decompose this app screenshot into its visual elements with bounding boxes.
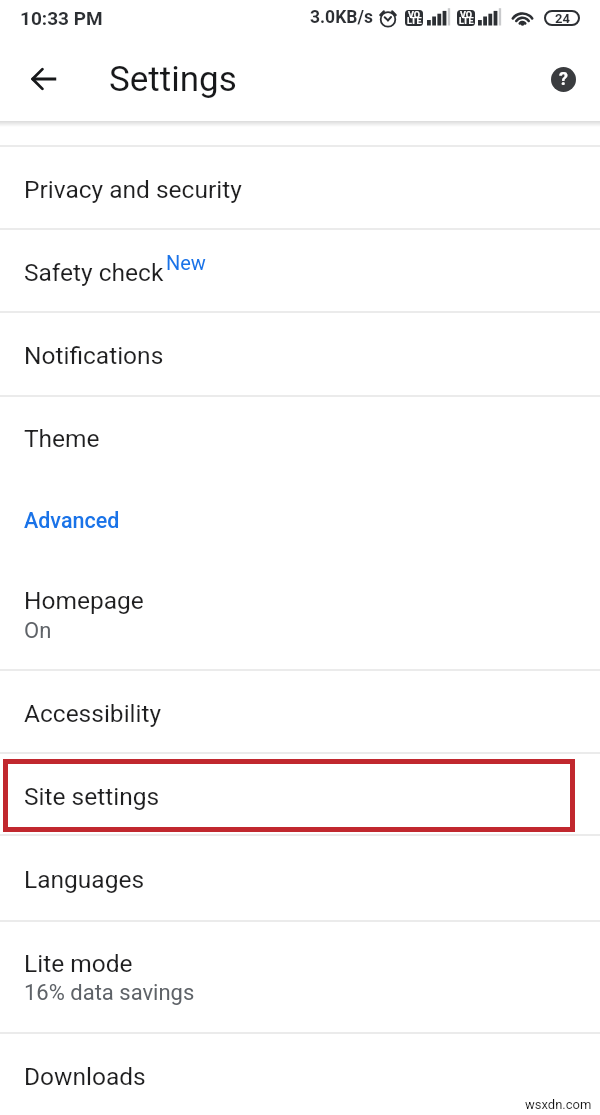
staticText: Privacy and security [24, 175, 242, 204]
button[interactable]: Accessibility [0, 669, 600, 752]
staticText: 10:33 PM [20, 7, 103, 29]
button[interactable]: Homepage [0, 560, 600, 669]
button[interactable]: Site settings [0, 752, 600, 834]
button[interactable]: Advanced [0, 478, 600, 560]
button[interactable]: Theme [0, 395, 600, 478]
staticText: ? [559, 68, 568, 89]
button[interactable]: Downloads [0, 1032, 600, 1115]
button[interactable]: Notifications [0, 311, 600, 395]
button[interactable]: Help [539, 55, 587, 103]
staticText: Accessibility [24, 699, 162, 728]
staticText: VO [460, 10, 473, 21]
button[interactable]: Languages [0, 834, 600, 920]
staticText: VO [408, 10, 421, 21]
staticText: 3.0KB/s [310, 7, 373, 28]
staticText: Lite mode [24, 949, 133, 978]
staticText: Advanced [24, 508, 120, 533]
staticText: Theme [24, 424, 100, 453]
staticText: Notifications [24, 341, 164, 370]
staticText: 24 [555, 11, 570, 26]
staticText: Downloads [24, 1062, 146, 1091]
staticText: New [166, 251, 206, 274]
button[interactable]: Privacy and security [0, 145, 600, 228]
button[interactable]: Safety check [0, 228, 600, 311]
staticText: On [24, 618, 52, 644]
staticText: LTE [407, 16, 422, 27]
staticText: Settings [109, 59, 237, 100]
staticText: Safety check [24, 258, 164, 287]
staticText: Languages [24, 865, 145, 894]
button[interactable]: Lite mode [0, 920, 600, 1032]
staticText: wsxdn.com [525, 1097, 592, 1112]
staticText: LTE [459, 16, 474, 27]
staticText: Homepage [24, 586, 144, 615]
staticText: 16% data savings [24, 980, 195, 1006]
button[interactable]: Back [20, 55, 68, 103]
staticText: Site settings [24, 782, 160, 811]
